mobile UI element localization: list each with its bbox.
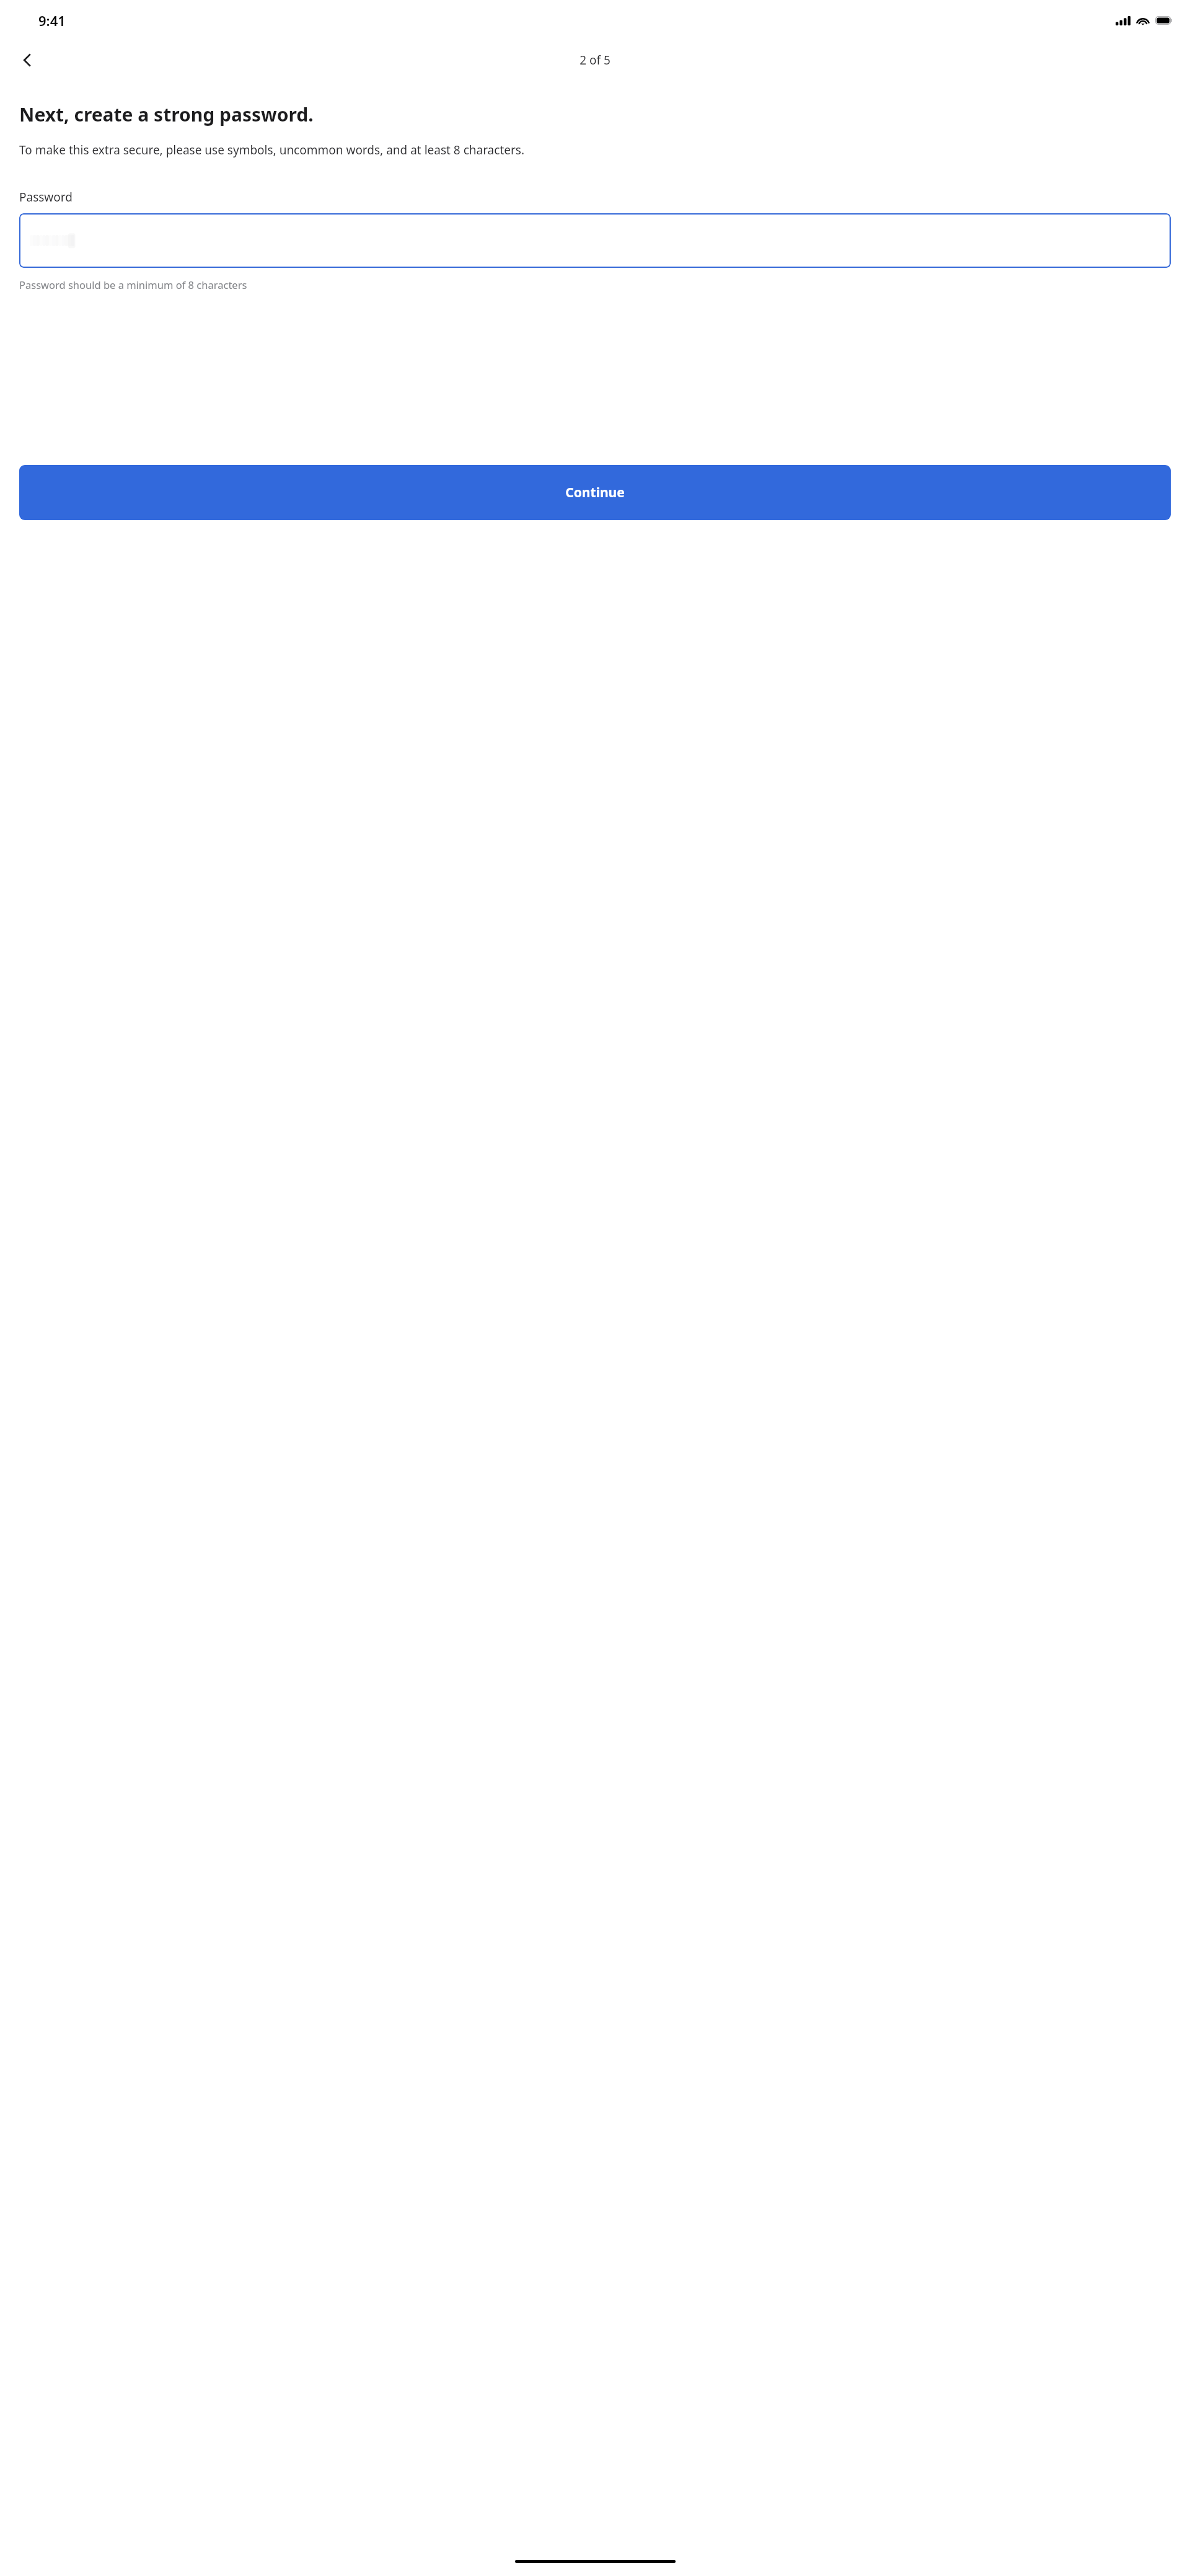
staticText: Next, create a strong password. — [19, 102, 1171, 127]
staticText: 9:41 — [38, 11, 66, 30]
staticText: Password — [19, 189, 73, 205]
staticText: To make this extra secure, please use sy… — [19, 142, 1171, 158]
staticText: Continue — [565, 484, 625, 502]
button[interactable]: Password input — [19, 213, 1171, 268]
staticText: 2 of 5 — [580, 52, 610, 68]
button[interactable]: Back — [14, 46, 41, 74]
staticText: Password should be a minimum of 8 charac… — [19, 278, 247, 291]
button[interactable]: Continue — [19, 465, 1171, 520]
